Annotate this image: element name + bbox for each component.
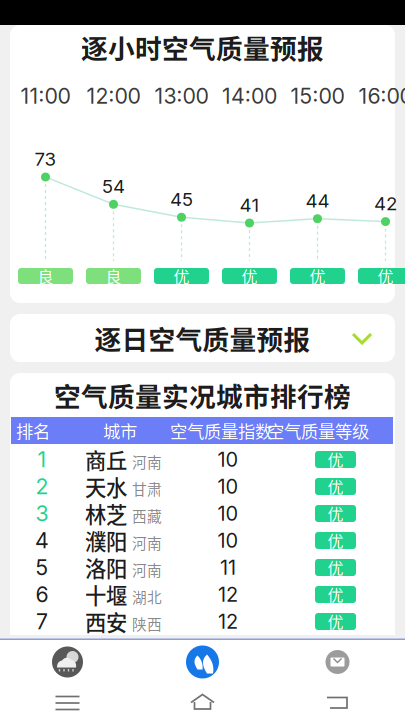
button[interactable]: 5 bbox=[10, 554, 395, 581]
staticText: 3 bbox=[35, 501, 48, 526]
button[interactable]: 6 bbox=[10, 581, 395, 608]
staticText: 6 bbox=[35, 582, 48, 607]
staticText: 优 bbox=[327, 556, 343, 579]
staticText: 良 bbox=[37, 264, 53, 288]
staticText: 5 bbox=[35, 555, 48, 580]
button[interactable]: 2 bbox=[10, 473, 395, 500]
staticText: 甘肃 bbox=[132, 478, 162, 499]
button[interactable]: 天气 bbox=[0, 640, 135, 684]
staticText: 河南 bbox=[132, 559, 162, 580]
staticText: 10 bbox=[217, 474, 238, 499]
staticText: 空气质量等级 bbox=[267, 418, 369, 443]
staticText: 11 bbox=[220, 555, 236, 580]
button[interactable]: 4 bbox=[10, 527, 395, 554]
staticText: 14:00 bbox=[222, 83, 277, 109]
staticText: 河南 bbox=[132, 451, 162, 472]
button[interactable]: Back bbox=[270, 684, 405, 720]
staticText: 逐小时空气质量预报 bbox=[81, 28, 324, 66]
button[interactable]: 消息 bbox=[270, 640, 405, 684]
staticText: 天水 bbox=[85, 471, 127, 502]
staticText: 16:00 bbox=[358, 83, 405, 109]
staticText: 西藏 bbox=[132, 505, 162, 526]
staticText: 优 bbox=[377, 264, 393, 288]
staticText: 10 bbox=[217, 528, 238, 553]
staticText: 西安 bbox=[85, 606, 127, 637]
staticText: 优 bbox=[327, 475, 343, 498]
staticText: 十堰 bbox=[85, 579, 127, 610]
staticText: 13:00 bbox=[154, 83, 208, 109]
staticText: 空气质量指数 bbox=[170, 418, 272, 443]
button[interactable]: 7 bbox=[10, 608, 395, 635]
button[interactable]: Home bbox=[135, 684, 270, 720]
staticText: 良 bbox=[105, 264, 121, 288]
staticText: 2 bbox=[35, 474, 48, 499]
button[interactable]: Menu bbox=[0, 684, 135, 720]
button[interactable]: 3 bbox=[10, 500, 395, 527]
staticText: 7 bbox=[36, 609, 48, 634]
button[interactable]: 逐日空气质量预报 bbox=[10, 314, 395, 362]
staticText: 12 bbox=[218, 609, 238, 634]
staticText: 1 bbox=[37, 447, 46, 472]
staticText: 陕西 bbox=[132, 613, 162, 634]
staticText: 54 bbox=[102, 175, 125, 198]
staticText: 11:00 bbox=[20, 83, 70, 109]
staticText: 洛阳 bbox=[85, 552, 127, 583]
staticText: 10 bbox=[217, 501, 238, 526]
staticText: 45 bbox=[170, 188, 193, 211]
staticText: 逐日空气质量预报 bbox=[94, 319, 310, 357]
staticText: 优 bbox=[327, 529, 343, 552]
staticText: 15:00 bbox=[290, 83, 344, 109]
staticText: 42 bbox=[374, 192, 397, 215]
button[interactable]: 空气质量 bbox=[135, 640, 270, 684]
staticText: 73 bbox=[34, 148, 56, 170]
staticText: 41 bbox=[239, 194, 259, 216]
staticText: 优 bbox=[327, 610, 343, 633]
staticText: 优 bbox=[309, 264, 325, 288]
staticText: 4 bbox=[35, 528, 49, 553]
staticText: 优 bbox=[327, 583, 343, 606]
staticText: 12:00 bbox=[86, 83, 140, 109]
staticText: 优 bbox=[327, 448, 343, 471]
staticText: 排名 bbox=[16, 418, 50, 443]
staticText: 城市 bbox=[103, 418, 137, 443]
staticText: 12 bbox=[218, 582, 238, 607]
staticText: 优 bbox=[173, 264, 189, 288]
button[interactable]: 1 bbox=[10, 446, 395, 473]
staticText: 10 bbox=[217, 447, 238, 472]
staticText: 商丘 bbox=[85, 444, 127, 475]
staticText: 濮阳 bbox=[85, 525, 127, 556]
staticText: 林芝 bbox=[85, 498, 127, 529]
staticText: 44 bbox=[305, 189, 329, 212]
staticText: 优 bbox=[241, 264, 257, 288]
staticText: 优 bbox=[327, 502, 343, 525]
staticText: 河南 bbox=[132, 532, 162, 553]
staticText: 空气质量实况城市排行榜 bbox=[54, 376, 351, 414]
staticText: 湖北 bbox=[132, 586, 162, 607]
